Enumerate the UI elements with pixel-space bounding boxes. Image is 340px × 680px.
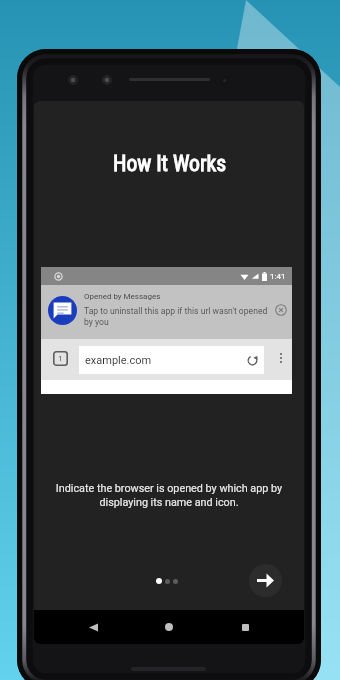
staticText: 1 <box>58 354 63 363</box>
button[interactable]: Home <box>152 610 186 644</box>
staticText: 1:41 <box>270 272 286 281</box>
button[interactable]: More options <box>273 350 289 366</box>
button[interactable]: 1:41 <box>41 267 292 394</box>
button[interactable]: Back <box>76 610 110 644</box>
staticText: example.com <box>85 354 152 367</box>
button[interactable]: Dismiss notification <box>275 304 287 316</box>
staticText: Opened by Messages <box>84 292 161 301</box>
staticText: How It Works <box>113 151 227 176</box>
button[interactable]: Next <box>249 564 282 597</box>
button[interactable]: Tabs <box>53 351 68 366</box>
staticText: Tap to uninstall this app if this url wa… <box>84 306 271 327</box>
staticText: Indicate the browser is opened by which … <box>52 482 286 509</box>
button[interactable]: Recent apps <box>228 610 262 644</box>
button[interactable]: example.com <box>79 346 264 374</box>
